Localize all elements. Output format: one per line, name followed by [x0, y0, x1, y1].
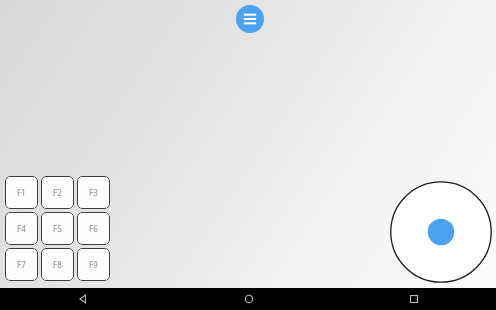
button[interactable]: Joystick [390, 181, 492, 283]
staticText: F8 [53, 259, 62, 270]
staticText: F4 [17, 223, 26, 234]
staticText: F7 [17, 259, 26, 270]
button[interactable]: F4 [5, 212, 38, 245]
button[interactable]: F7 [5, 248, 38, 281]
button[interactable]: Home [166, 288, 331, 310]
staticText: F3 [89, 187, 98, 198]
staticText: F5 [53, 223, 62, 234]
staticText: F2 [53, 187, 62, 198]
button[interactable]: Menu [236, 5, 264, 33]
button[interactable]: Back [0, 288, 166, 310]
button[interactable]: F1 [5, 176, 38, 209]
button[interactable]: F5 [41, 212, 74, 245]
button[interactable]: F2 [41, 176, 74, 209]
button[interactable]: F3 [77, 176, 110, 209]
staticText: F9 [89, 259, 98, 270]
button[interactable]: Recent apps [331, 288, 496, 310]
button[interactable]: F8 [41, 248, 74, 281]
button[interactable]: F6 [77, 212, 110, 245]
button[interactable]: F9 [77, 248, 110, 281]
staticText: F6 [89, 223, 98, 234]
staticText: F1 [17, 187, 26, 198]
